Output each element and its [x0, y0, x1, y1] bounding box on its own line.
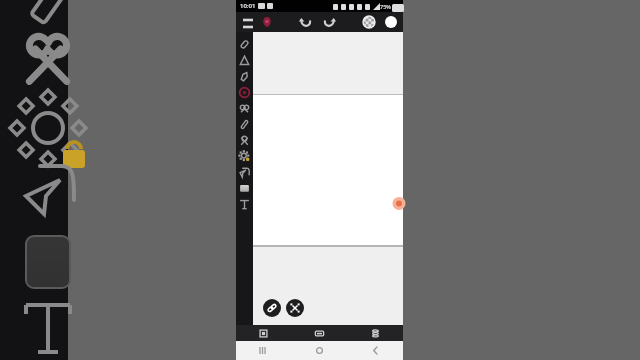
button[interactable]: Recents — [236, 341, 291, 360]
button[interactable]: App logo — [259, 14, 275, 30]
button[interactable]: Tool 0 — [236, 36, 253, 52]
button[interactable]: Tool 3 — [236, 84, 253, 100]
button[interactable]: Tool 5 — [236, 116, 253, 132]
button[interactable]: Tool 8 — [236, 164, 253, 180]
button[interactable]: Tool 1 — [236, 52, 253, 68]
button[interactable]: Keyboard — [291, 325, 347, 341]
staticText: 75% — [380, 3, 391, 10]
button[interactable]: Tool 2 — [236, 68, 253, 84]
button[interactable]: Link nodes — [263, 299, 281, 317]
button[interactable]: Tool 10 — [236, 196, 253, 212]
button[interactable]: Foreground color white — [382, 13, 400, 31]
button[interactable]: Undo — [296, 13, 314, 31]
button[interactable]: Redo — [320, 13, 338, 31]
button[interactable]: Move / transform — [286, 299, 304, 317]
button[interactable]: Stack — [347, 325, 403, 341]
button[interactable]: Tool 7 — [236, 148, 253, 164]
button[interactable]: Tool 6 — [236, 132, 253, 148]
button[interactable]: Tool 9 — [236, 180, 253, 196]
button[interactable]: Menu — [240, 14, 256, 30]
button[interactable]: Tool 4 — [236, 100, 253, 116]
button[interactable]: Back — [347, 341, 403, 360]
button[interactable]: Home — [291, 341, 347, 360]
button[interactable]: Layers panel — [236, 325, 291, 341]
button[interactable]: Transparency color — [360, 13, 378, 31]
staticText: 10:01 — [240, 2, 256, 10]
